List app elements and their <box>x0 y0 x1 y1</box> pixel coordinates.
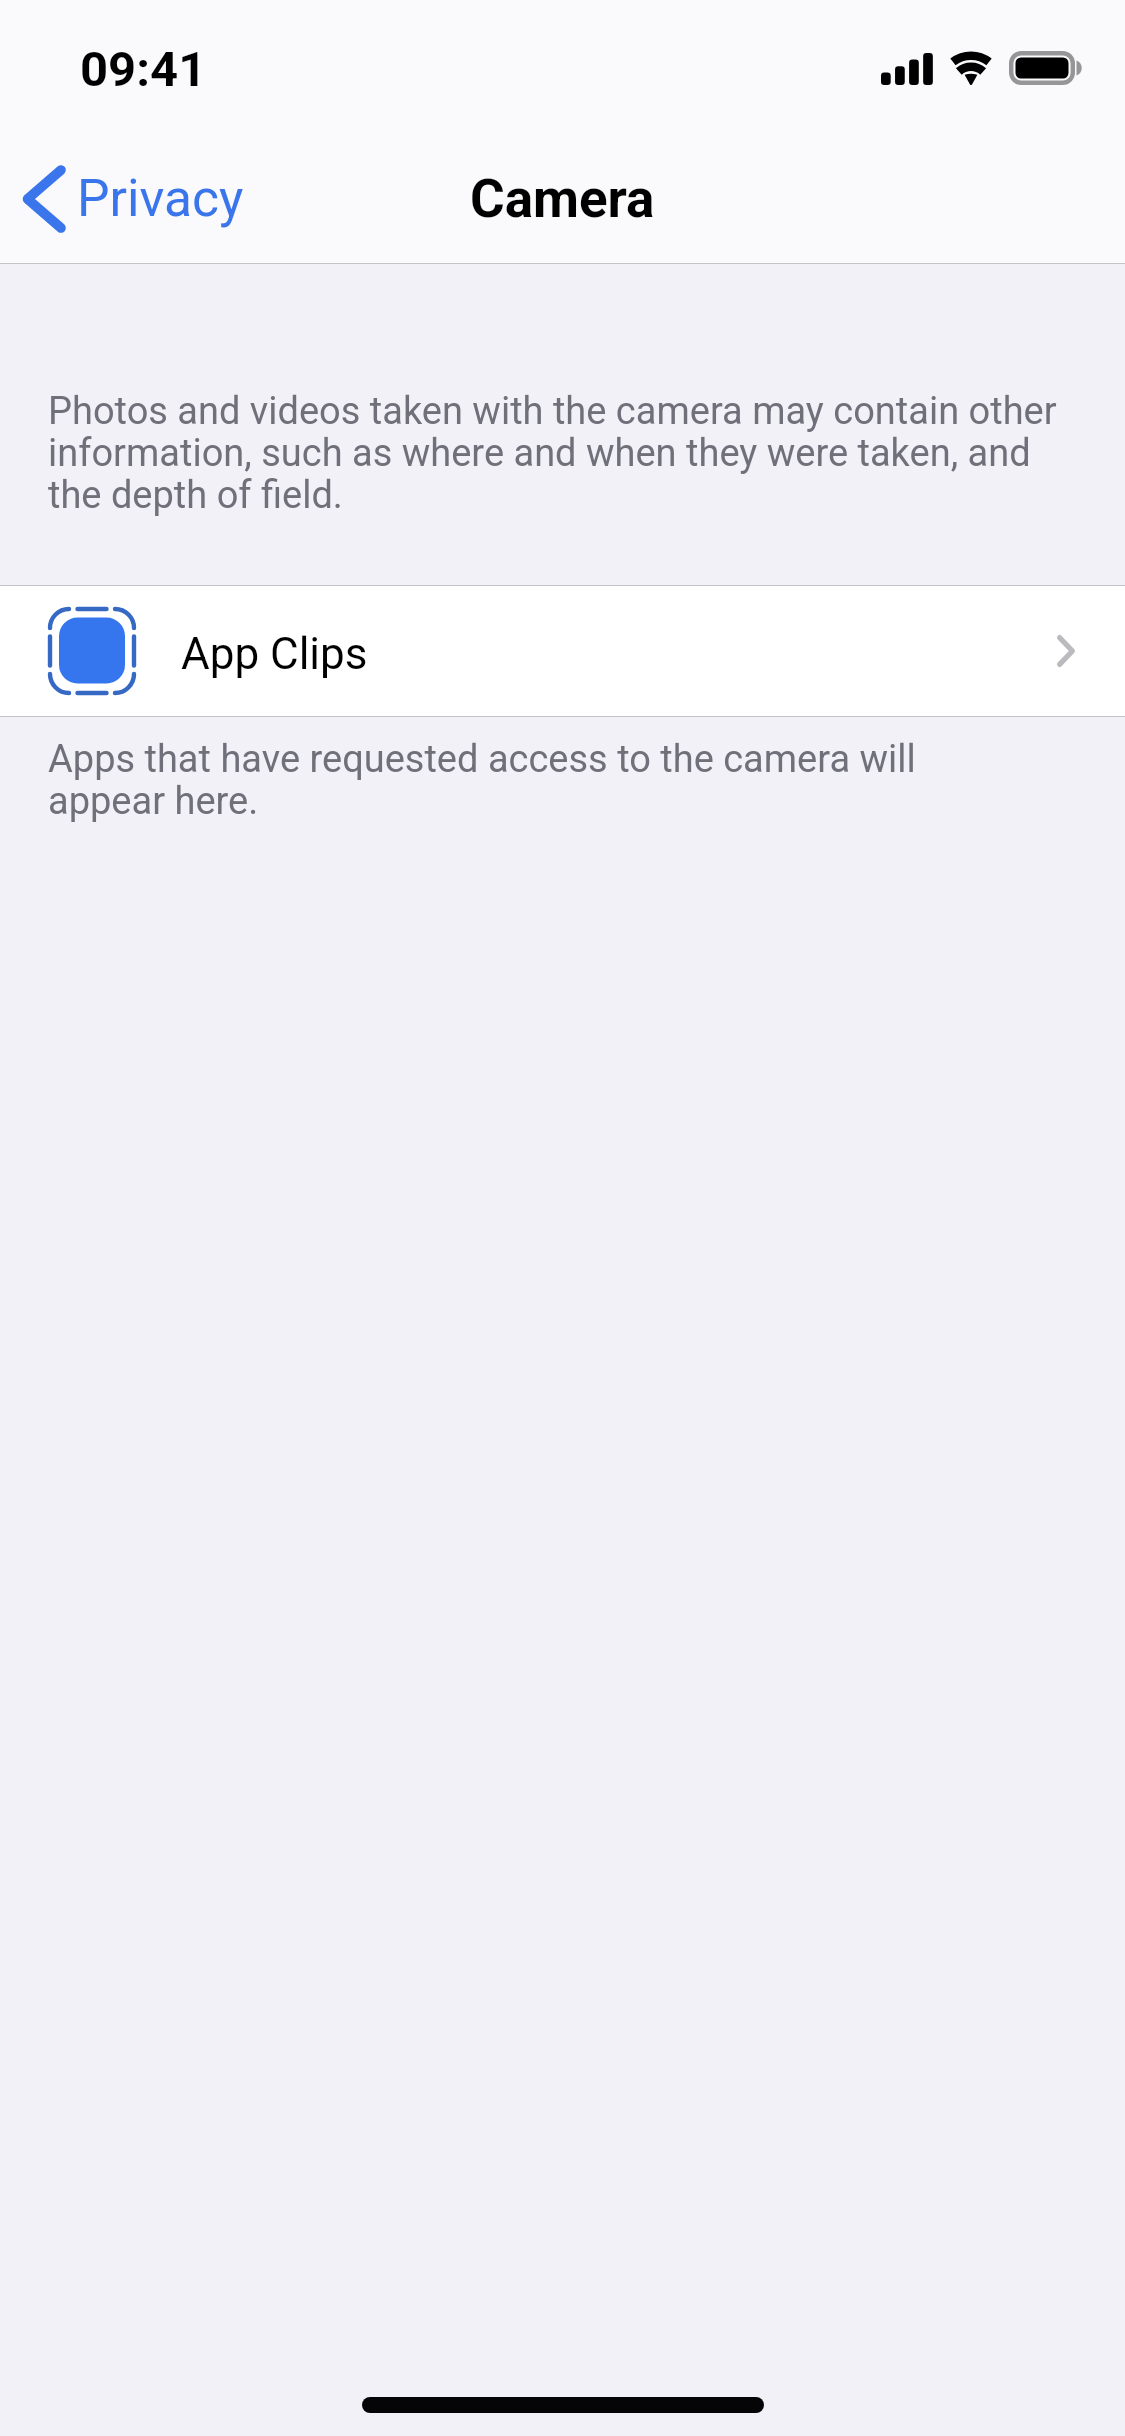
button[interactable]: Back to Privacy <box>0 153 268 249</box>
button[interactable]: App Clips <box>0 586 1125 716</box>
other: Battery full <box>1009 51 1082 85</box>
staticText: Apps that have requested access to the c… <box>48 737 973 824</box>
staticText: 09:41 <box>80 41 207 98</box>
other: Wi-Fi <box>948 51 994 85</box>
staticText: Privacy <box>77 168 244 228</box>
other: Cellular signal strength <box>881 52 933 85</box>
staticText: Camera <box>470 168 655 230</box>
staticText: App Clips <box>181 628 368 680</box>
staticText: Photos and videos taken with the camera … <box>48 389 1079 518</box>
